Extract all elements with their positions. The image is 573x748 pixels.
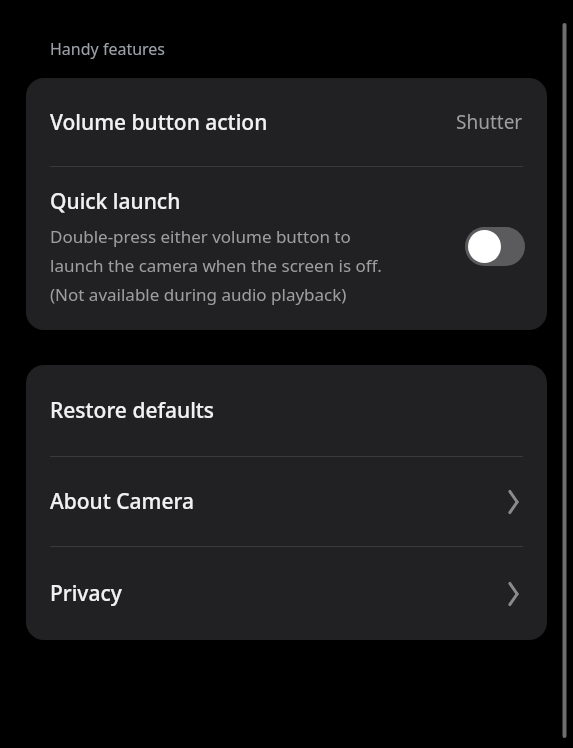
- other: Open About Camera: [505, 488, 521, 516]
- staticText: Volume button action: [50, 108, 456, 137]
- staticText: Restore defaults: [50, 396, 521, 425]
- button[interactable]: Quick launch toggle: [465, 227, 525, 266]
- button[interactable]: Volume button action: [26, 78, 547, 166]
- staticText: Privacy: [50, 579, 505, 608]
- staticText: Double-press either volume button to lau…: [50, 225, 382, 306]
- button[interactable]: About Camera: [26, 457, 547, 546]
- staticText: Shutter: [456, 109, 523, 135]
- staticText: Quick launch: [50, 187, 181, 216]
- other: Open Privacy: [505, 580, 521, 608]
- staticText: Handy features: [50, 38, 166, 60]
- button[interactable]: Quick launch: [26, 167, 547, 330]
- button[interactable]: Restore defaults: [26, 365, 547, 456]
- staticText: About Camera: [50, 487, 505, 516]
- button[interactable]: Privacy: [26, 547, 547, 640]
